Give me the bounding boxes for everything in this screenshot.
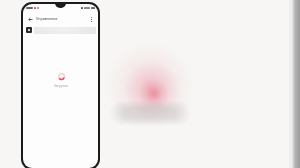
button[interactable]: Ещё <box>87 15 95 23</box>
button[interactable]: Назад <box>26 15 34 23</box>
button[interactable] <box>23 25 98 35</box>
staticText: Управление приложениями <box>36 16 61 21</box>
staticText: Загрузка <box>54 84 68 88</box>
